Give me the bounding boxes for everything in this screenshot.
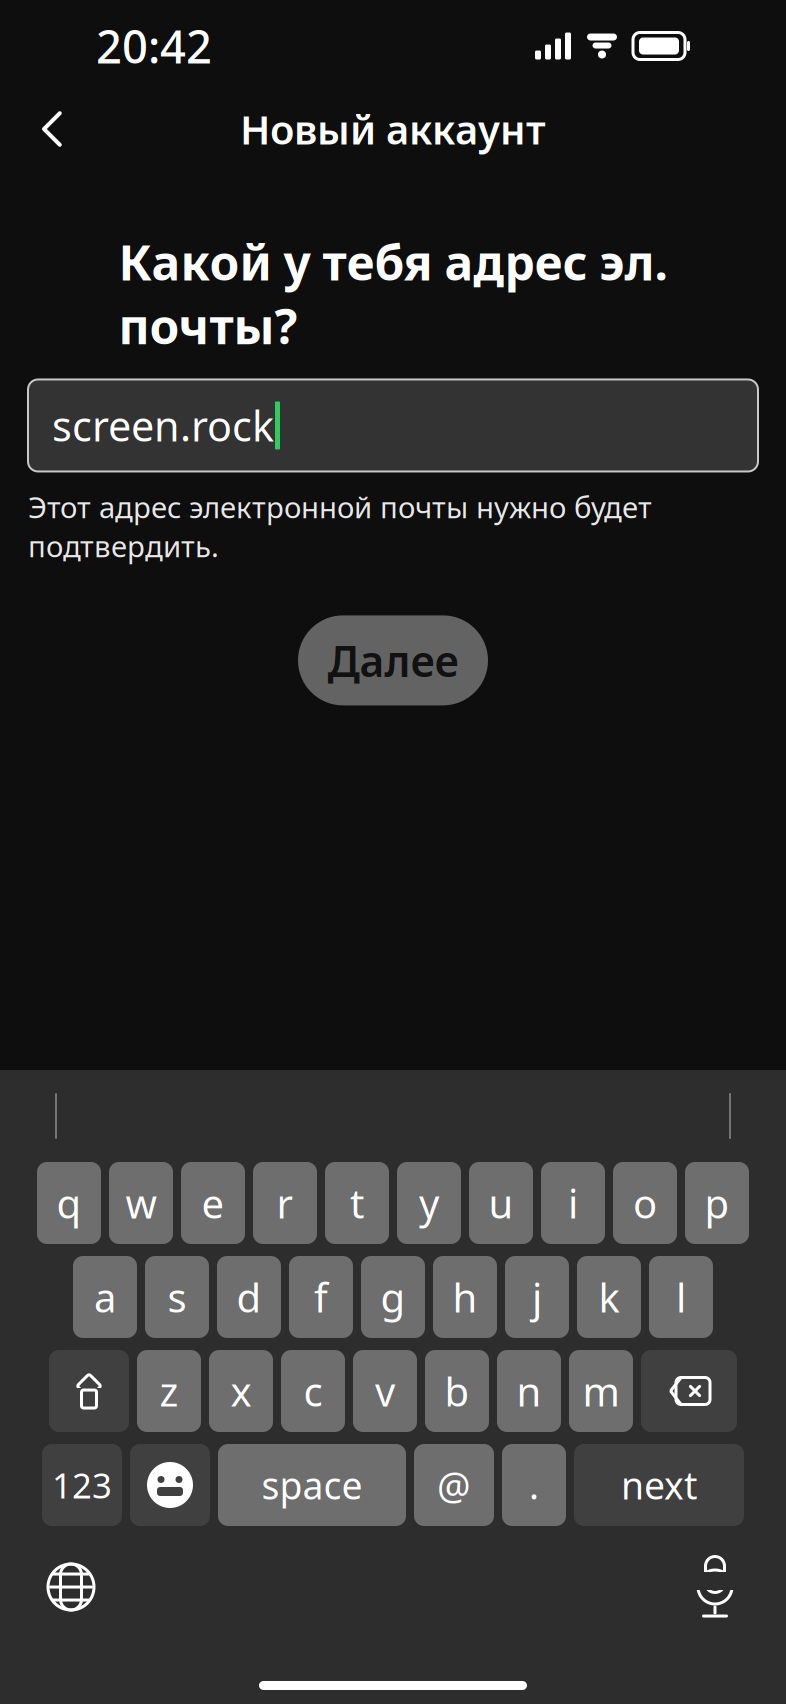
button[interactable]: Dictate (680, 1552, 750, 1622)
staticText: y (419, 1176, 439, 1229)
button[interactable]: n (497, 1350, 561, 1432)
staticText: c (303, 1364, 322, 1417)
button[interactable]: space (218, 1444, 406, 1526)
staticText: j (532, 1270, 542, 1323)
staticText: Далее (327, 632, 458, 689)
button[interactable]: k (577, 1256, 641, 1338)
staticText: i (568, 1176, 578, 1229)
staticText: 20:42 (96, 16, 212, 76)
button[interactable]: u (469, 1162, 533, 1244)
button[interactable]: s (145, 1256, 209, 1338)
staticText: e (201, 1176, 224, 1229)
button[interactable]: b (425, 1350, 489, 1432)
button[interactable]: Delete (641, 1350, 737, 1432)
button[interactable]: Next keyboard (36, 1552, 106, 1622)
staticText: d (236, 1270, 261, 1323)
button[interactable]: 123 (42, 1444, 122, 1526)
staticText: n (516, 1364, 541, 1417)
button[interactable]: w (109, 1162, 173, 1244)
button[interactable]: Back (22, 99, 82, 159)
staticText: v (375, 1364, 395, 1417)
button[interactable]: . (502, 1444, 566, 1526)
staticText: m (582, 1364, 619, 1417)
staticText: Этот адрес электронной почты нужно будет… (28, 487, 652, 565)
button[interactable]: m (569, 1350, 633, 1432)
button[interactable]: f (289, 1256, 353, 1338)
staticText: o (633, 1176, 657, 1229)
staticText: b (444, 1364, 469, 1417)
button[interactable]: a (73, 1256, 137, 1338)
button[interactable]: o (613, 1162, 677, 1244)
staticText: u (488, 1176, 513, 1229)
button[interactable]: c (281, 1350, 345, 1432)
staticText: 123 (52, 1462, 112, 1508)
button[interactable]: r (253, 1162, 317, 1244)
button[interactable]: next (574, 1444, 744, 1526)
staticText: g (380, 1270, 405, 1323)
button[interactable]: Shift (49, 1350, 129, 1432)
button[interactable]: l (649, 1256, 713, 1338)
button[interactable]: Далее (298, 615, 488, 705)
button[interactable]: x (209, 1350, 273, 1432)
staticText: h (452, 1270, 477, 1323)
button[interactable]: d (217, 1256, 281, 1338)
staticText: p (704, 1176, 729, 1229)
staticText: k (598, 1270, 619, 1323)
button[interactable]: i (541, 1162, 605, 1244)
staticText: screen.rock (52, 398, 274, 453)
staticText: @ (437, 1460, 471, 1510)
button[interactable]: Emoji (130, 1444, 210, 1526)
staticText: a (94, 1270, 116, 1323)
staticText: z (159, 1364, 178, 1417)
staticText: Новый аккаунт (240, 102, 546, 155)
button[interactable]: t (325, 1162, 389, 1244)
button[interactable]: p (685, 1162, 749, 1244)
button[interactable]: e (181, 1162, 245, 1244)
button[interactable]: h (433, 1256, 497, 1338)
staticText: . (529, 1460, 539, 1510)
button[interactable]: y (397, 1162, 461, 1244)
button[interactable]: z (137, 1350, 201, 1432)
button[interactable]: v (353, 1350, 417, 1432)
button[interactable]: g (361, 1256, 425, 1338)
staticText: next (621, 1460, 697, 1510)
staticText: Какой у тебя адрес эл. почты? (118, 230, 667, 357)
button[interactable]: q (37, 1162, 101, 1244)
staticText: s (167, 1270, 186, 1323)
button[interactable]: @ (414, 1444, 494, 1526)
button[interactable]: j (505, 1256, 569, 1338)
staticText: w (125, 1176, 156, 1229)
staticText: r (276, 1176, 293, 1229)
staticText: q (56, 1176, 81, 1229)
staticText: f (314, 1270, 328, 1323)
staticText: l (676, 1270, 686, 1323)
staticText: x (230, 1364, 251, 1417)
staticText: space (261, 1460, 362, 1510)
staticText: t (350, 1176, 364, 1229)
